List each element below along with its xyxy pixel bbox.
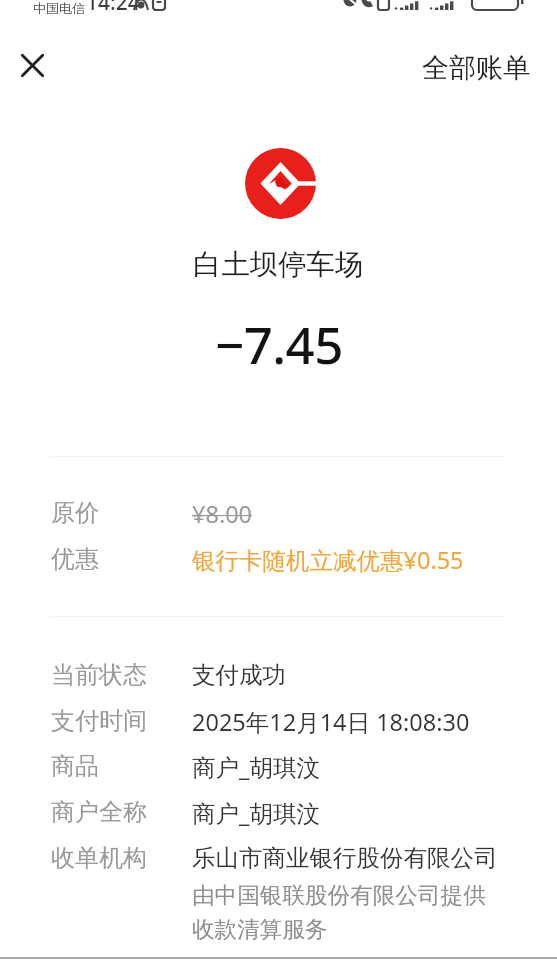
staticText: 乐山市商业银行股份有限公司 bbox=[192, 843, 498, 873]
staticText: −7.45 bbox=[215, 309, 343, 378]
staticText: 银行卡随机立减优惠¥0.55 bbox=[192, 544, 464, 576]
staticText: 当前状态 bbox=[51, 660, 147, 690]
staticText: 由中国银联股份有限公司提供 bbox=[192, 881, 486, 909]
staticText: 全部账单 bbox=[422, 51, 530, 85]
staticText: 商户_胡琪汶 bbox=[192, 751, 320, 783]
staticText: 支付时间 bbox=[51, 706, 147, 736]
staticText: 商户全称 bbox=[51, 797, 147, 827]
staticText: 收款清算服务 bbox=[192, 915, 328, 943]
button[interactable]: 全部账单 bbox=[408, 43, 544, 93]
staticText: 2025年12月14日 18:08:30 bbox=[192, 706, 470, 738]
staticText: 收单机构 bbox=[51, 843, 147, 873]
staticText: 14:24 bbox=[86, 0, 140, 17]
staticText: ¥8.00 bbox=[192, 498, 253, 530]
staticText: 原价 bbox=[51, 498, 99, 528]
staticText: 白土坝停车场 bbox=[193, 247, 364, 283]
staticText: 优惠 bbox=[51, 544, 99, 574]
staticText: 商户_胡琪汶 bbox=[192, 797, 320, 829]
staticText: 商品 bbox=[51, 751, 99, 781]
button[interactable]: Close bbox=[10, 43, 55, 88]
staticText: 中国电信 bbox=[33, 0, 85, 16]
staticText: 支付成功 bbox=[192, 660, 286, 690]
